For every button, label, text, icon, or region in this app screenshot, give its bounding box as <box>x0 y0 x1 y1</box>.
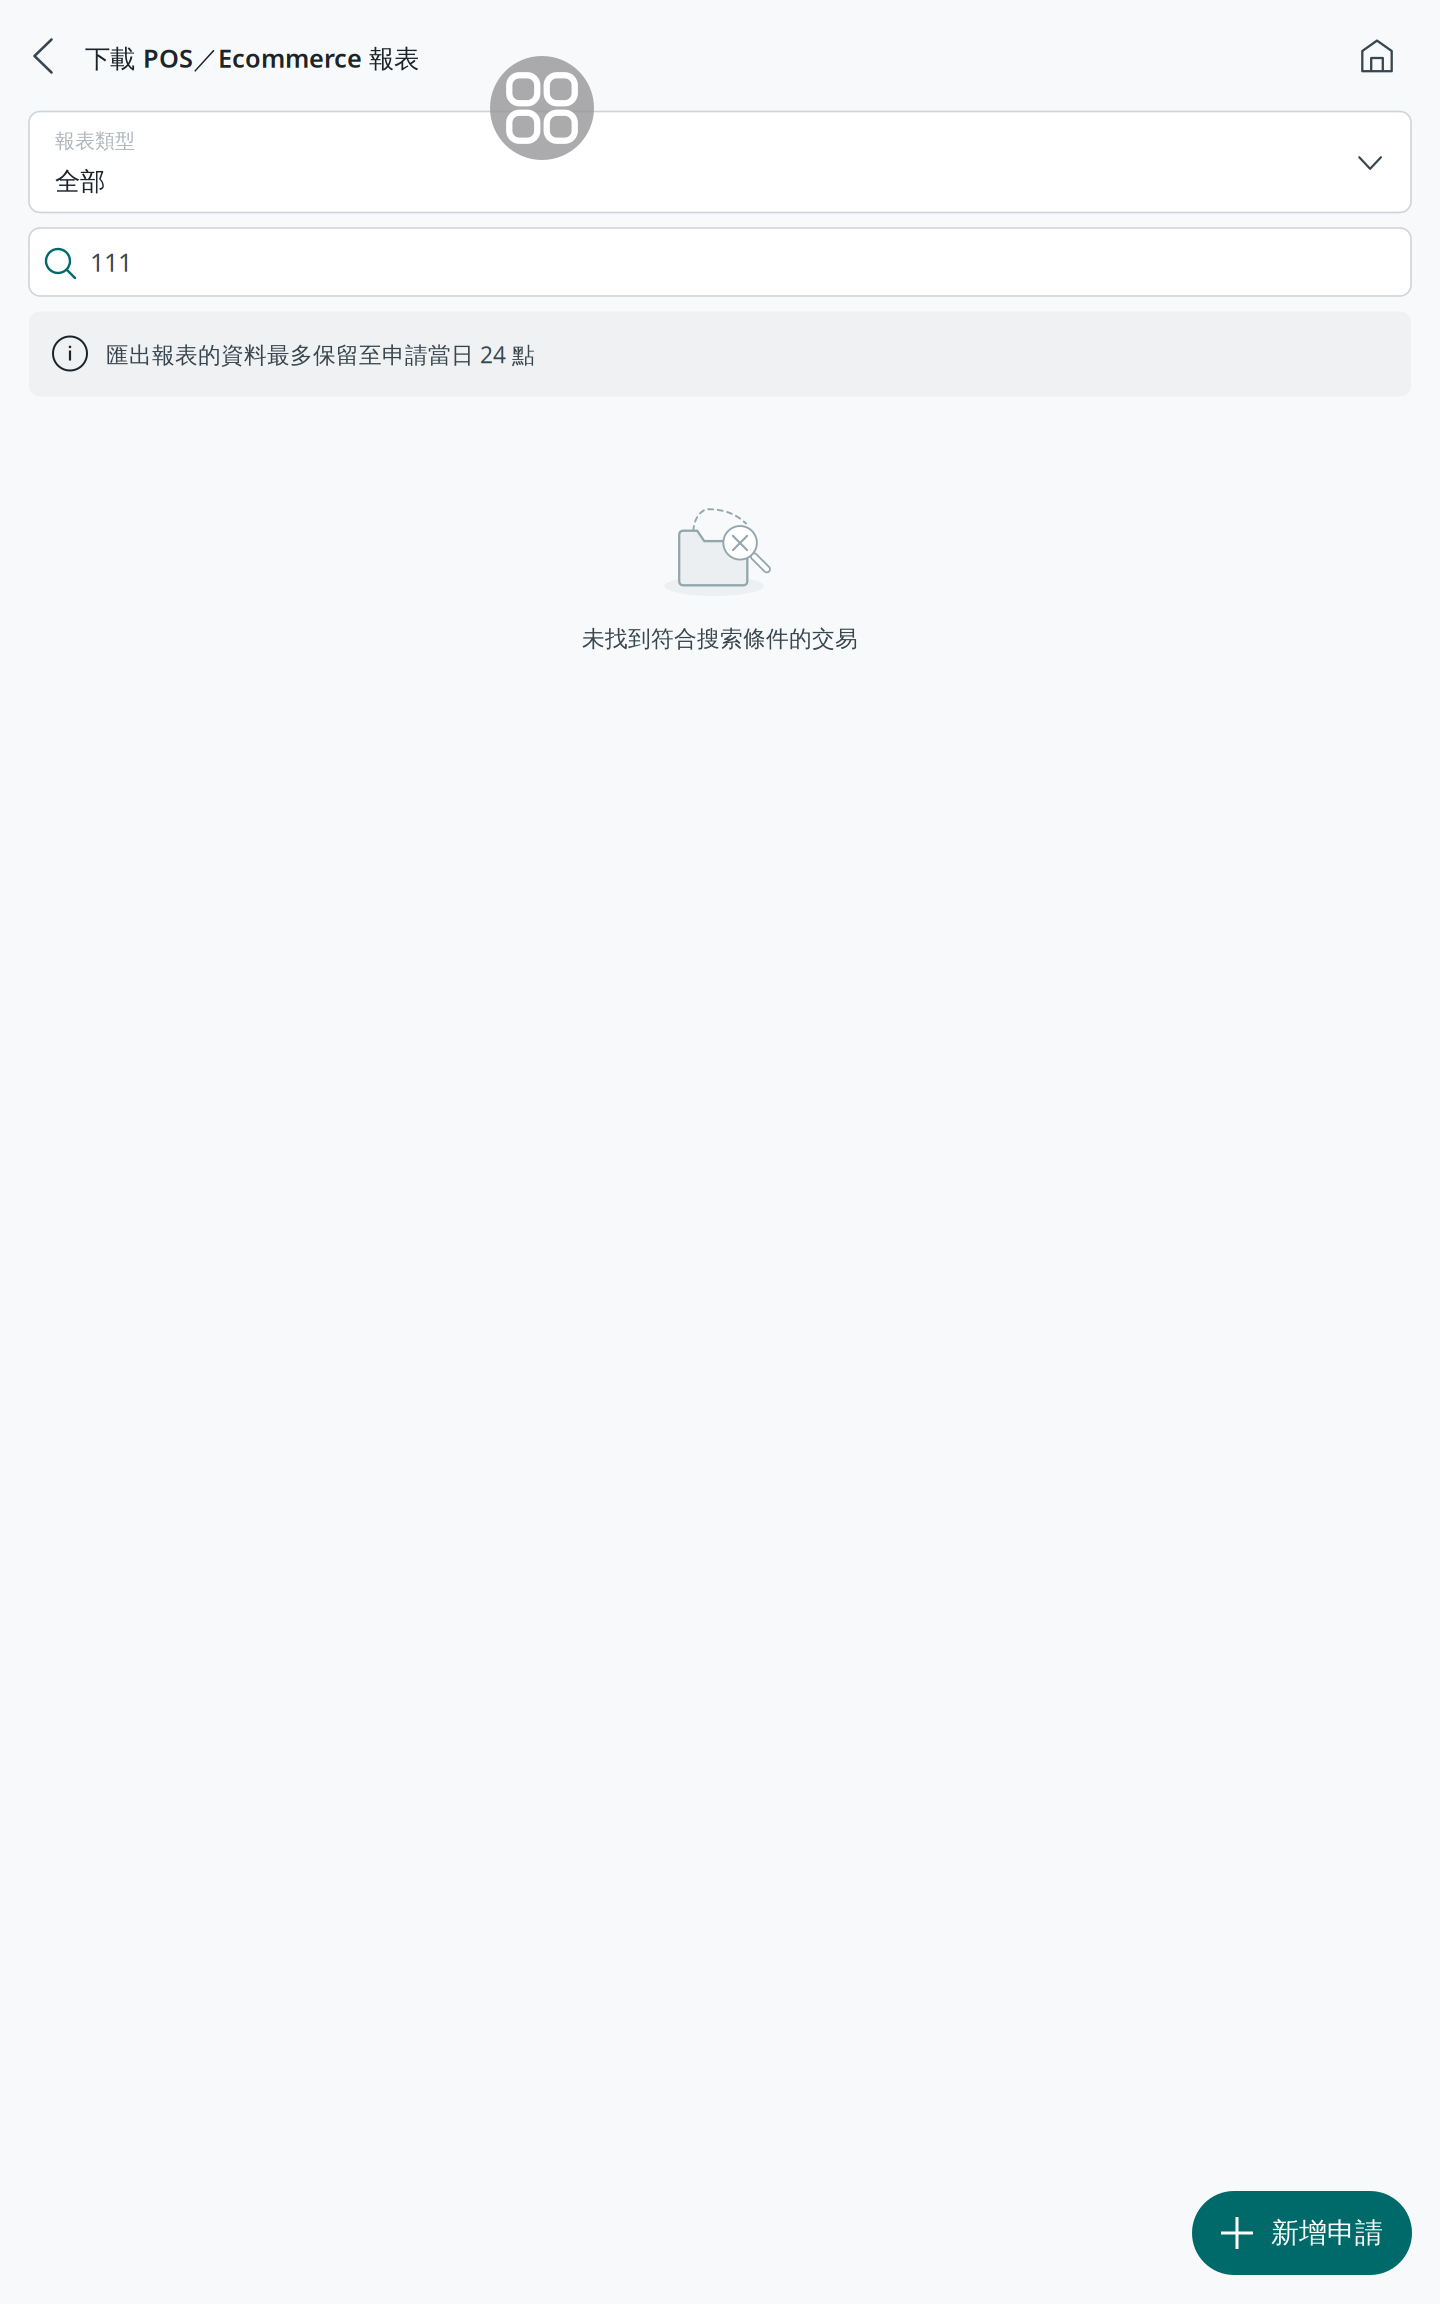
staticText: 匯出報表的資料最多保留至申請當日 24 點 <box>106 339 535 369</box>
staticText: 下載 POS／Ecommerce 報表 <box>85 41 419 75</box>
button[interactable]: 111 <box>29 228 1411 296</box>
staticText: 全部 <box>55 166 105 197</box>
staticText: 報表類型 <box>55 129 135 153</box>
button[interactable]: Home <box>1329 8 1425 104</box>
button[interactable]: 新增申請 <box>1192 2191 1412 2275</box>
button[interactable]: App grid <box>490 56 594 160</box>
staticText: 未找到符合搜索條件的交易 <box>582 625 858 653</box>
staticText: 新增申請 <box>1271 2216 1383 2250</box>
button[interactable]: Back <box>6 8 80 104</box>
button[interactable]: 報表類型 <box>29 111 1411 212</box>
staticText: 111 <box>90 245 132 279</box>
